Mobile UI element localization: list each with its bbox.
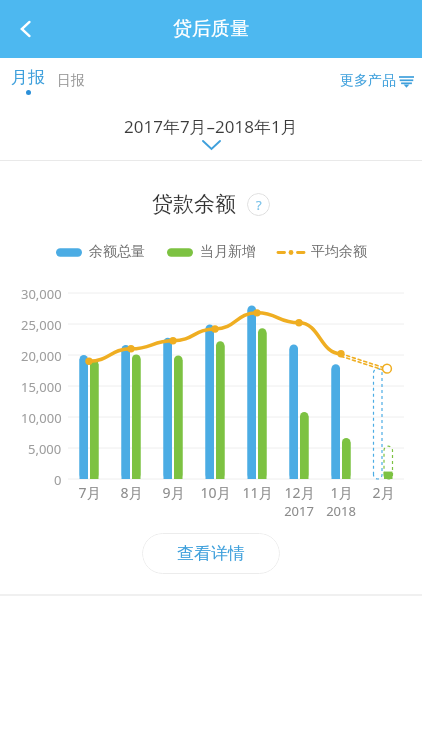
staticText: 日报 (57, 72, 85, 90)
staticText: 查看详情 (177, 543, 245, 564)
staticText: 贷后质量 (173, 17, 249, 41)
staticText: 9月 (162, 483, 185, 502)
staticText: 贷款余额 (152, 191, 236, 217)
button[interactable]: 日报 (52, 66, 90, 96)
staticText: 30,000 (21, 285, 62, 303)
staticText: 2017 (284, 502, 314, 520)
staticText: 12月 (284, 483, 315, 502)
button[interactable]: 月报 (6, 65, 50, 97)
staticText: 10,000 (21, 409, 62, 427)
staticText: 当月新增 (200, 243, 256, 261)
staticText: ? (256, 196, 262, 214)
staticText: 0 (54, 471, 62, 489)
staticText: 11月 (242, 483, 273, 502)
staticText: 7月 (78, 483, 101, 502)
button[interactable]: Back (0, 3, 52, 55)
staticText: 5,000 (28, 440, 62, 458)
staticText: 更多产品 (340, 72, 396, 90)
staticText: 8月 (120, 483, 143, 502)
staticText: 2017年7月–2018年1月 (124, 115, 298, 138)
staticText: 余额总量 (89, 243, 145, 261)
button[interactable]: 2017年7月–2018年1月 (0, 104, 422, 160)
staticText: 15,000 (21, 378, 62, 396)
staticText: 2018 (326, 502, 356, 520)
button[interactable]: 查看详情 (142, 533, 280, 574)
staticText: 平均余额 (311, 243, 367, 261)
staticText: 月报 (11, 67, 45, 88)
staticText: 1月 (330, 483, 353, 502)
button[interactable]: Help (247, 193, 270, 216)
staticText: 20,000 (21, 347, 62, 365)
staticText: 10月 (200, 483, 231, 502)
staticText: 25,000 (21, 316, 62, 334)
button[interactable]: 更多产品 (340, 66, 414, 96)
staticText: 2月 (372, 483, 395, 502)
